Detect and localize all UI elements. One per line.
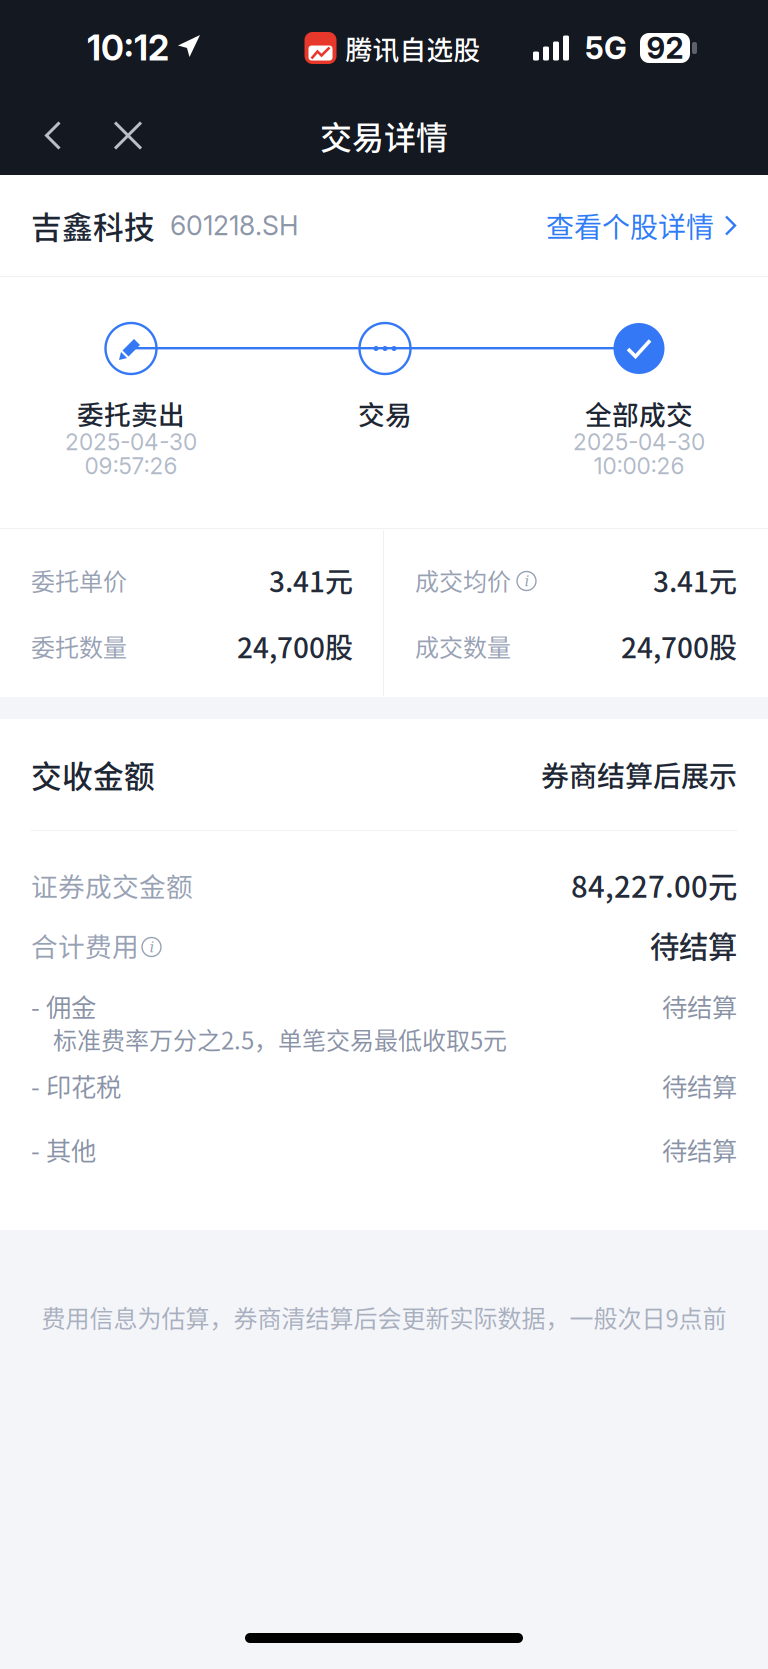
staticText: 成交数量 — [415, 629, 511, 663]
staticText: - 佣金 — [31, 988, 96, 1024]
staticText: 2025-04-30 — [573, 428, 705, 456]
staticText: 交易 — [358, 394, 412, 432]
staticText: 委托卖出 — [77, 394, 185, 432]
staticText: 601218.SH — [170, 209, 299, 242]
staticText: 待结算 — [650, 924, 737, 966]
staticText: 查看个股详情 — [546, 205, 714, 246]
staticText: 吉鑫科技 — [31, 203, 155, 248]
button[interactable]: Back — [17, 96, 89, 175]
staticText: 10:12 — [87, 27, 169, 69]
staticText: 委托数量 — [31, 629, 127, 663]
staticText: i — [524, 572, 529, 590]
staticText: 合计费用 — [31, 926, 139, 964]
staticText: 交易详情 — [320, 112, 448, 159]
staticText: 证券成交金额 — [31, 866, 193, 904]
staticText: - 印花税 — [31, 1067, 121, 1104]
staticText: 全部成交 — [585, 394, 693, 432]
staticText: 成交均价 — [415, 563, 511, 597]
staticText: 10:00:26 — [593, 452, 684, 480]
staticText: 券商结算后展示 — [541, 754, 737, 795]
staticText: 24,700股 — [237, 626, 353, 666]
staticText: 92 — [646, 30, 683, 66]
staticText: 交收金额 — [31, 752, 155, 797]
button[interactable]: 吉鑫科技 — [0, 175, 768, 276]
staticText: 5G — [585, 29, 627, 66]
staticText: 费用信息为估算，券商清结算后会更新实际数据，一般次日9点前 — [41, 1300, 726, 1334]
staticText: - 其他 — [31, 1131, 96, 1168]
staticText: 腾讯自选股 — [345, 29, 480, 67]
staticText: 84,227.00元 — [571, 864, 737, 906]
staticText: 2025-04-30 — [65, 428, 197, 456]
staticText: 待结算 — [662, 1131, 737, 1168]
staticText: i — [149, 938, 154, 956]
staticText: 3.41元 — [653, 560, 737, 600]
staticText: 标准费率万分之2.5，单笔交易最低收取5元 — [53, 1022, 507, 1056]
staticText: 待结算 — [662, 988, 737, 1024]
staticText: 09:57:26 — [84, 452, 177, 480]
staticText: 委托单价 — [31, 563, 127, 597]
staticText: 3.41元 — [269, 560, 353, 600]
staticText: 24,700股 — [621, 626, 737, 666]
staticText: 待结算 — [662, 1067, 737, 1104]
button[interactable]: Close — [89, 96, 167, 175]
